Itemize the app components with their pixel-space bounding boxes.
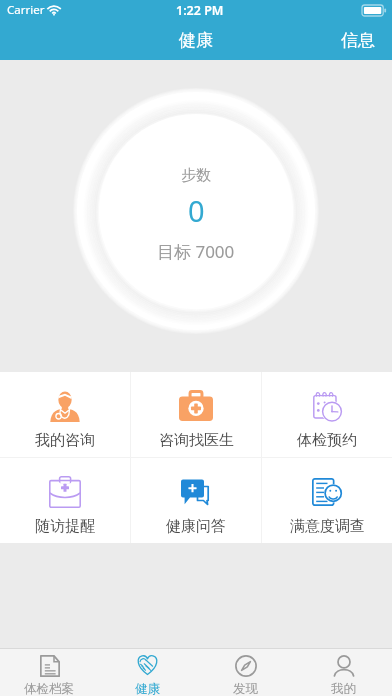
button[interactable]: 健康 xyxy=(98,649,196,696)
staticText: 健康 xyxy=(179,30,213,51)
staticText: 0 xyxy=(188,191,205,230)
staticText: 随访提醒 xyxy=(35,517,95,536)
button[interactable]: 体检预约 xyxy=(262,372,392,457)
button[interactable]: 我的咨询 xyxy=(0,372,130,457)
staticText: 1:22 PM xyxy=(176,2,224,19)
button[interactable]: 随访提醒 xyxy=(0,458,130,543)
button[interactable]: 咨询找医生 xyxy=(131,372,261,457)
button[interactable]: 体检档案 xyxy=(0,649,98,696)
staticText: 满意度调查 xyxy=(290,517,365,536)
button[interactable]: 发现 xyxy=(196,649,294,696)
button[interactable]: 健康问答 xyxy=(131,458,261,543)
staticText: 目标 7000 xyxy=(157,240,235,263)
staticText: 我的 xyxy=(331,681,356,696)
staticText: 体检预约 xyxy=(297,431,357,450)
staticText: 健康 xyxy=(135,681,160,696)
staticText: 体检档案 xyxy=(24,681,74,696)
button[interactable]: 我的 xyxy=(294,649,392,696)
staticText: 信息 xyxy=(341,30,375,51)
staticText: 健康问答 xyxy=(166,517,226,536)
staticText: 咨询找医生 xyxy=(159,431,234,450)
staticText: 发现 xyxy=(233,681,258,696)
staticText: Carrier xyxy=(7,2,45,18)
staticText: 我的咨询 xyxy=(35,431,95,450)
button[interactable]: 信息 xyxy=(324,21,392,60)
button[interactable]: 满意度调查 xyxy=(262,458,392,543)
staticText: 步数 xyxy=(181,166,211,185)
